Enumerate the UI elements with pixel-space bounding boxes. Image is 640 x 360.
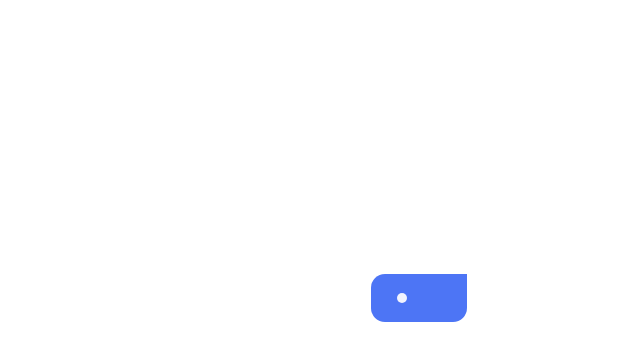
button[interactable]: Compose xyxy=(371,274,467,322)
